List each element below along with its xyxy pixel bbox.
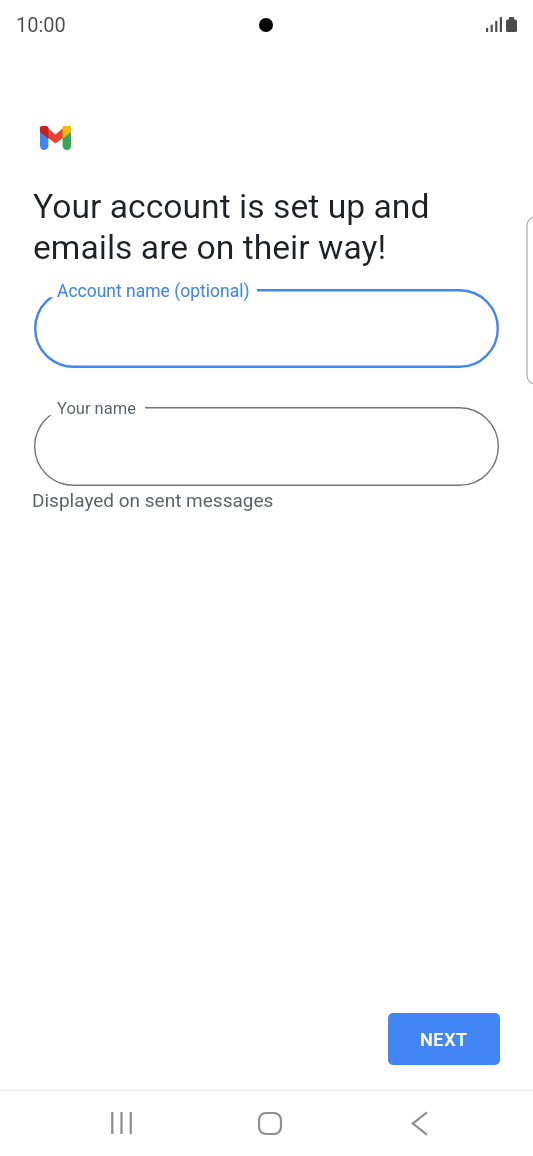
button[interactable]: NEXT xyxy=(388,1013,500,1065)
staticText: Account name (optional) xyxy=(57,281,250,302)
button[interactable]: Your name xyxy=(34,407,499,486)
staticText: 10:00 xyxy=(16,13,66,36)
staticText: Your name xyxy=(57,399,136,418)
staticText: Your account is set up and emails are on… xyxy=(33,187,430,267)
button[interactable]: Home xyxy=(238,1091,302,1155)
staticText: Displayed on sent messages xyxy=(32,489,274,511)
button[interactable]: Account name (optional) xyxy=(34,289,499,368)
staticText: NEXT xyxy=(420,1029,468,1050)
button[interactable]: Back xyxy=(387,1091,451,1155)
button[interactable]: Recent apps xyxy=(89,1091,153,1155)
